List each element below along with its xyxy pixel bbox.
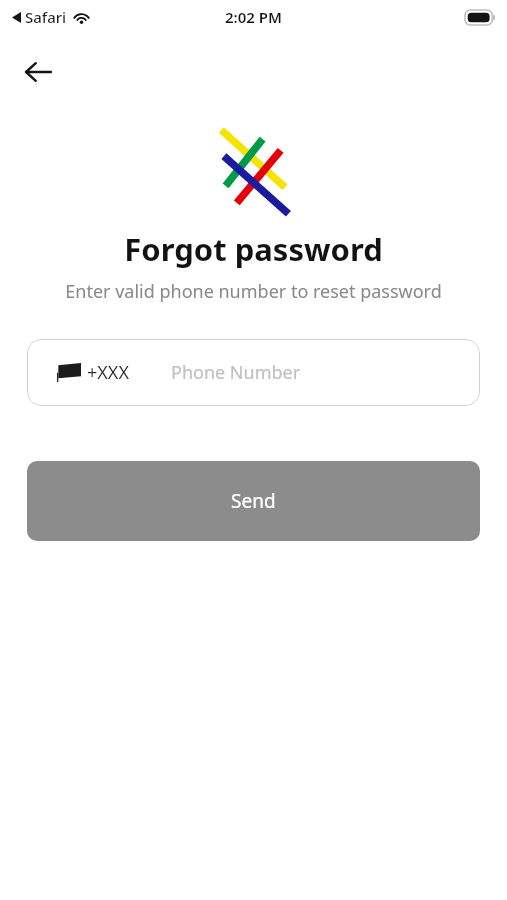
staticText: Safari	[25, 7, 67, 27]
staticText: Enter valid phone number to reset passwo…	[65, 279, 442, 304]
staticText: +XXX	[87, 360, 129, 385]
button[interactable]: +XXX	[27, 339, 480, 406]
button[interactable]: Send	[27, 461, 480, 541]
button[interactable]: Back	[16, 50, 60, 94]
staticText: Forgot password	[124, 228, 383, 270]
staticText: Phone Number	[171, 360, 301, 385]
staticText: 2:02 PM	[225, 7, 282, 27]
staticText: Send	[231, 488, 276, 514]
